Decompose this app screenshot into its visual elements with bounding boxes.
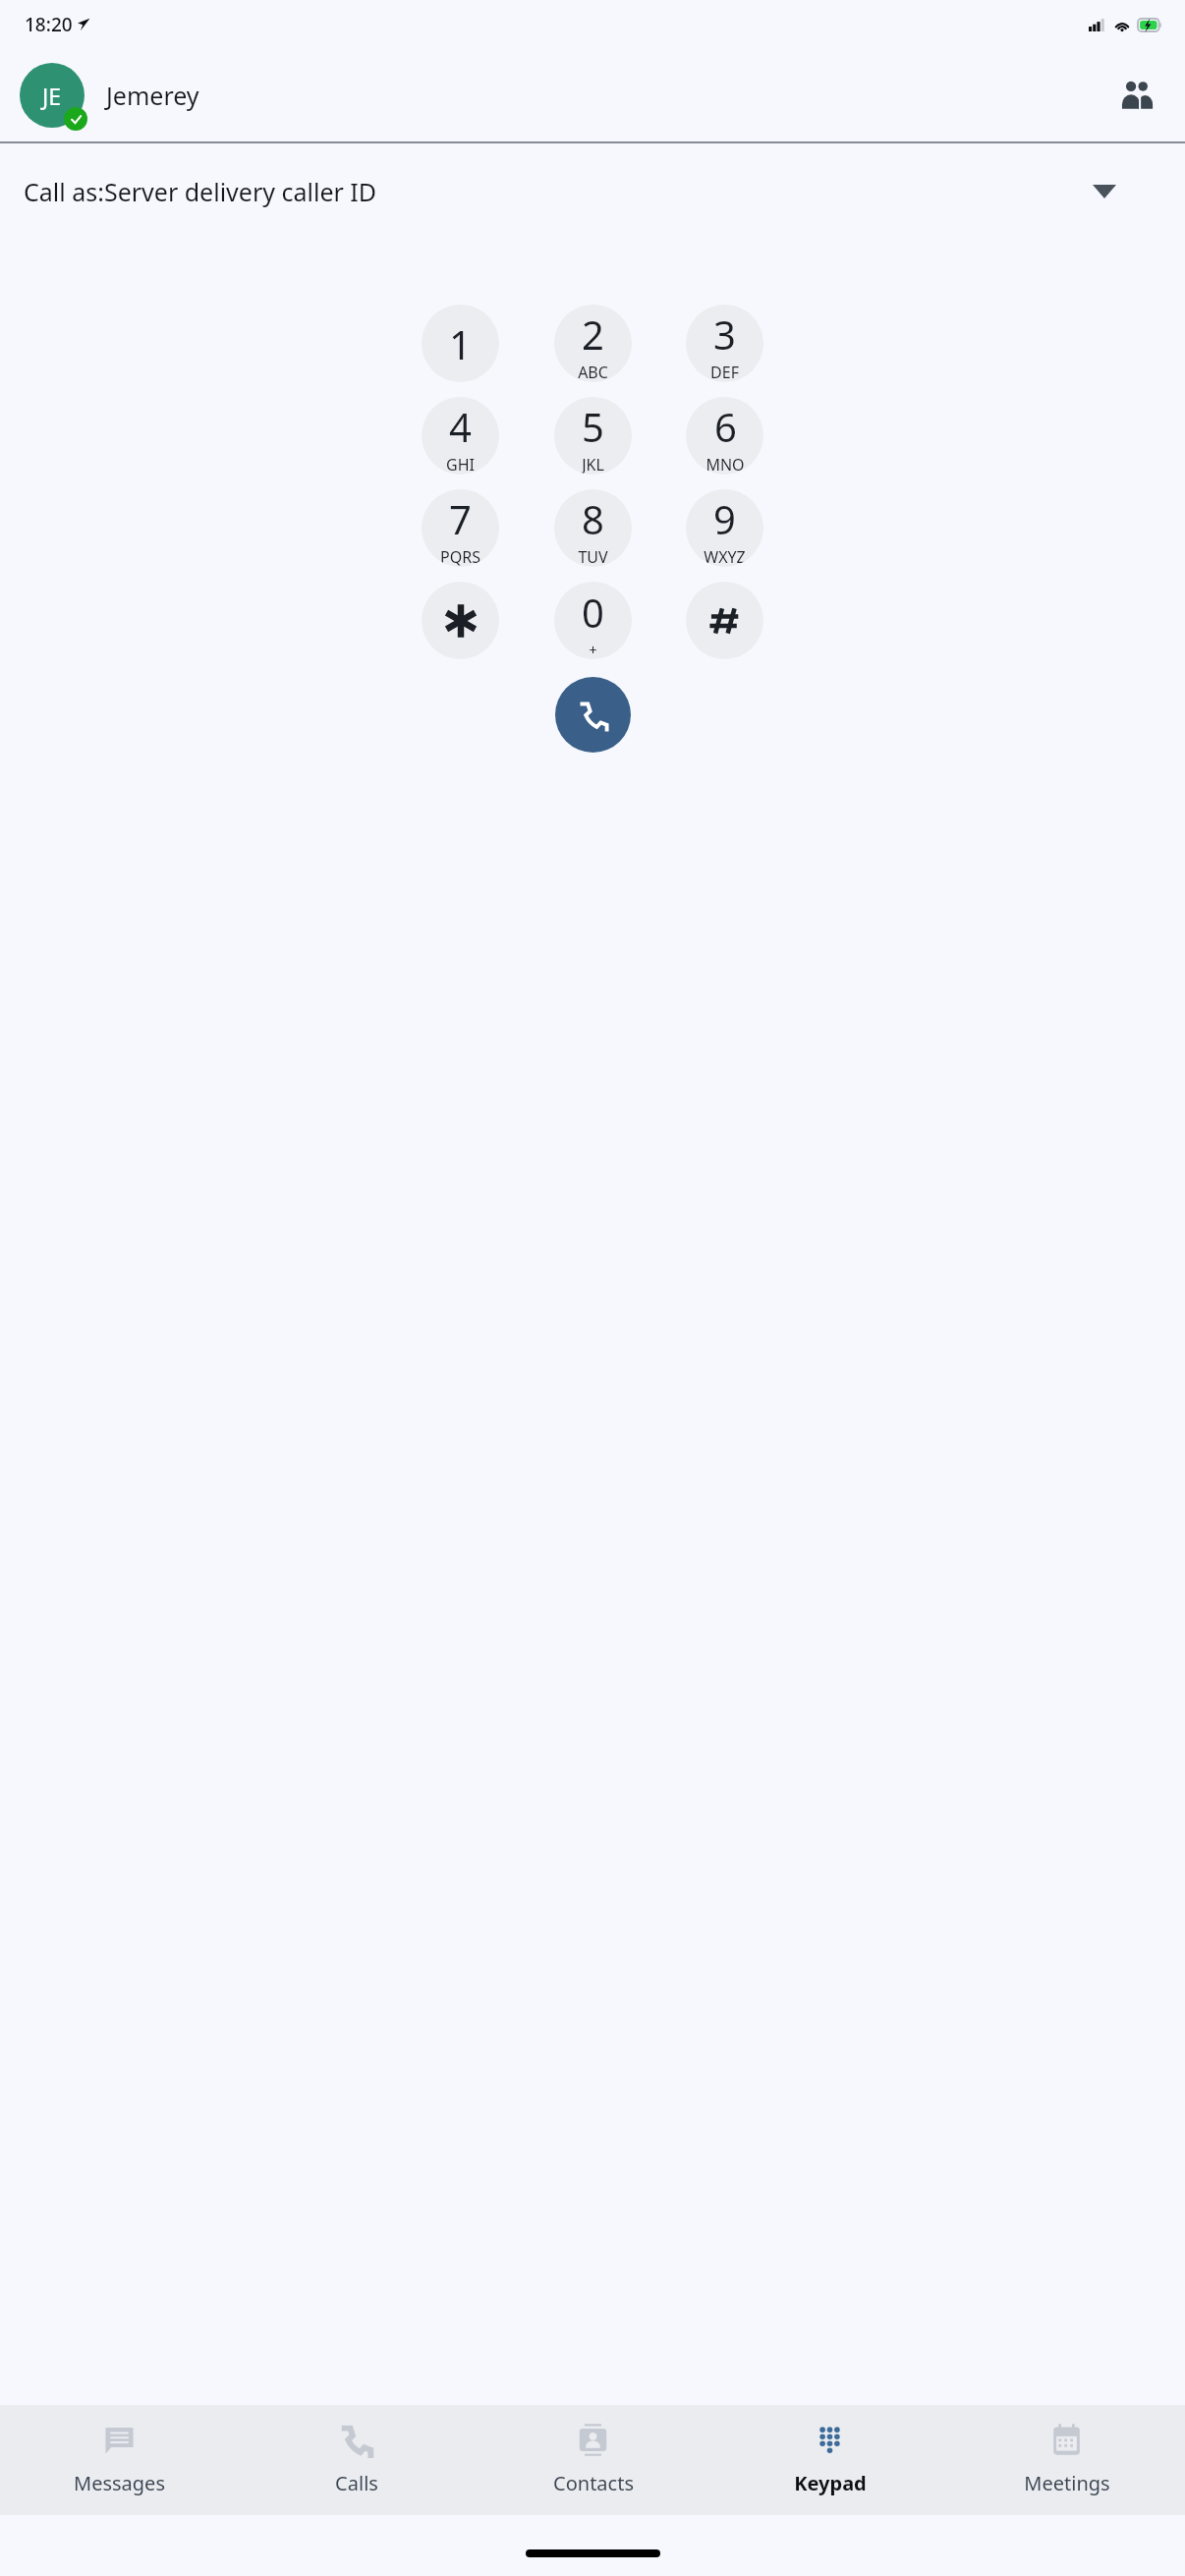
button[interactable]: 4: [422, 397, 499, 475]
staticText: 4: [449, 400, 472, 453]
staticText: 2: [582, 308, 604, 361]
staticText: Calls: [335, 2470, 378, 2496]
button[interactable]: Contacts: [1108, 68, 1163, 123]
staticText: 3: [713, 308, 736, 361]
button[interactable]: 0: [554, 582, 632, 659]
staticText: Keypad: [794, 2470, 867, 2496]
staticText: JKL: [582, 454, 604, 475]
button[interactable]: [422, 582, 499, 659]
staticText: Contacts: [553, 2470, 634, 2496]
staticText: +: [589, 641, 597, 659]
staticText: 8: [582, 492, 604, 545]
staticText: Messages: [74, 2470, 165, 2496]
button[interactable]: 8: [554, 489, 632, 567]
staticText: Call as:Server delivery caller ID: [24, 175, 377, 208]
staticText: 1: [449, 317, 472, 370]
button[interactable]: Call: [555, 677, 631, 753]
staticText: WXYZ: [704, 546, 746, 567]
button[interactable]: 3: [686, 305, 763, 382]
button[interactable]: 6: [686, 397, 763, 475]
button[interactable]: 9: [686, 489, 763, 567]
staticText: 6: [714, 400, 737, 453]
staticText: JE: [42, 81, 62, 111]
staticText: 9: [713, 492, 736, 545]
staticText: 5: [582, 400, 604, 453]
staticText: Meetings: [1024, 2470, 1110, 2496]
staticText: GHI: [446, 454, 475, 475]
button[interactable]: 2: [554, 305, 632, 382]
staticText: 7: [449, 492, 472, 545]
button[interactable]: Messages: [0, 2405, 238, 2496]
button[interactable]: Contacts: [475, 2405, 711, 2496]
button[interactable]: JE: [20, 63, 199, 128]
staticText: DEF: [710, 362, 739, 382]
staticText: 0: [582, 586, 604, 639]
staticText: MNO: [705, 454, 745, 475]
button[interactable]: 5: [554, 397, 632, 475]
staticText: ABC: [578, 362, 608, 382]
button[interactable]: 1: [422, 305, 499, 382]
button[interactable]: Calls: [238, 2405, 475, 2496]
staticText: TUV: [578, 546, 608, 567]
button[interactable]: Keypad: [711, 2405, 948, 2496]
button[interactable]: [686, 582, 763, 659]
staticText: Jemerey: [106, 79, 199, 112]
button[interactable]: Meetings: [948, 2405, 1185, 2496]
staticText: PQRS: [440, 546, 480, 567]
staticText: 18:20: [25, 12, 73, 37]
button[interactable]: Call as:Server delivery caller ID: [0, 143, 1185, 240]
button[interactable]: 7: [422, 489, 499, 567]
